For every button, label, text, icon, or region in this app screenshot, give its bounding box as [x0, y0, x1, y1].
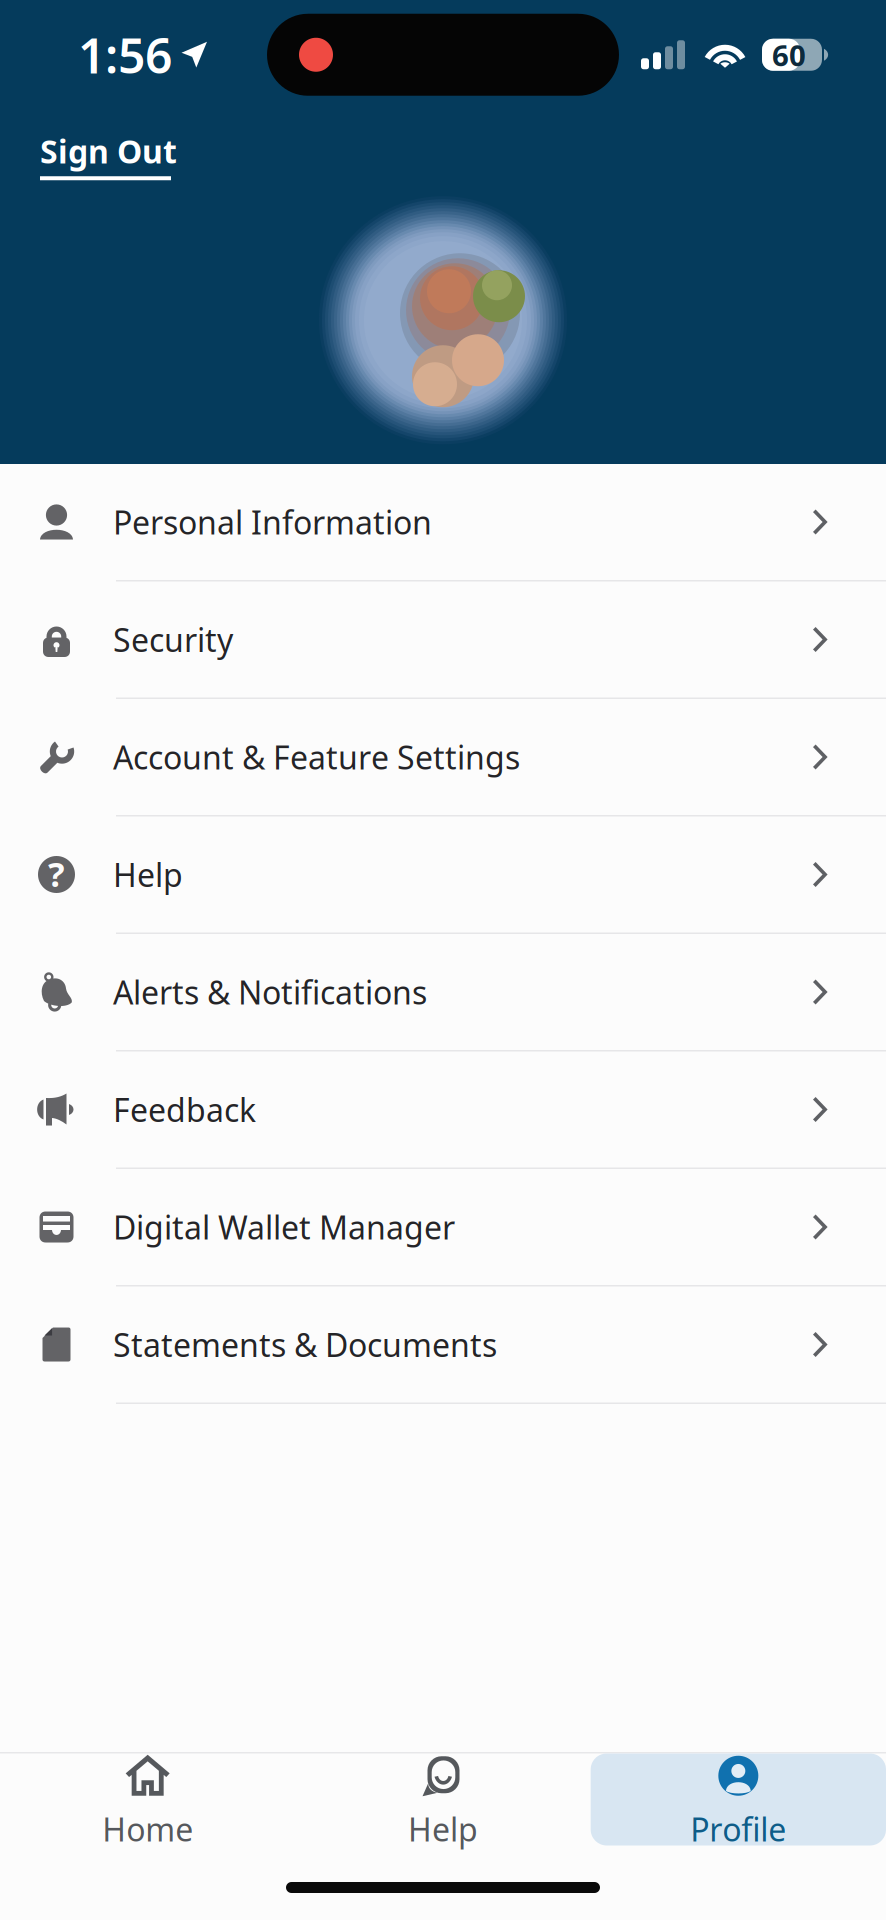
staticText: ?: [48, 850, 65, 896]
button[interactable]: ?: [0, 816, 886, 934]
staticText: Feedback: [113, 1088, 256, 1131]
button[interactable]: Alerts & Notifications: [0, 934, 886, 1051]
staticText: Account & Feature Settings: [113, 736, 520, 778]
button[interactable]: Sign Out: [0, 116, 191, 188]
staticText: Sign Out: [40, 130, 177, 172]
staticText: Security: [113, 618, 233, 661]
button[interactable]: Digital Wallet Manager: [0, 1169, 886, 1286]
staticText: Profile: [690, 1808, 786, 1850]
staticText: Alerts & Notifications: [113, 971, 427, 1013]
staticText: Digital Wallet Manager: [113, 1206, 455, 1248]
button[interactable]: Account & Feature Settings: [0, 699, 886, 816]
staticText: 1:56: [78, 23, 172, 87]
button[interactable]: Help: [295, 1753, 591, 1845]
button[interactable]: Home: [0, 1753, 295, 1845]
button[interactable]: Profile: [591, 1753, 886, 1845]
staticText: Statements & Documents: [113, 1323, 497, 1366]
staticText: Help: [113, 853, 183, 896]
staticText: Home: [102, 1808, 193, 1850]
button[interactable]: Personal Information: [0, 464, 886, 581]
button[interactable]: Statements & Documents: [0, 1286, 886, 1404]
button[interactable]: Feedback: [0, 1051, 886, 1169]
staticText: 60: [772, 35, 806, 74]
staticText: Personal Information: [113, 501, 432, 543]
staticText: Help: [408, 1808, 478, 1850]
button[interactable]: Security: [0, 581, 886, 699]
